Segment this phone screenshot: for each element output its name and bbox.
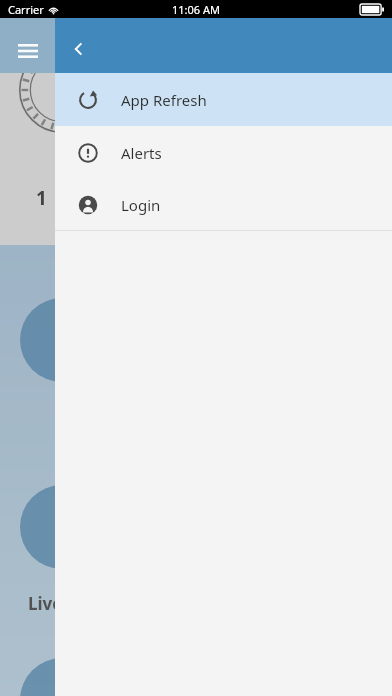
staticText: App Refresh bbox=[121, 90, 207, 110]
staticText: Alerts bbox=[121, 143, 162, 163]
button[interactable]: Alerts bbox=[55, 126, 392, 179]
staticText: Live bbox=[28, 592, 63, 615]
staticText: 11:06 AM bbox=[172, 2, 220, 17]
staticText: Carrier bbox=[8, 2, 44, 17]
button[interactable]: Open navigation menu bbox=[6, 29, 50, 73]
staticText: 1 bbox=[36, 185, 47, 211]
staticText: Login bbox=[121, 195, 161, 215]
button[interactable]: Back bbox=[55, 25, 103, 73]
button[interactable]: App Refresh bbox=[55, 73, 392, 126]
button[interactable]: Login bbox=[55, 179, 392, 230]
